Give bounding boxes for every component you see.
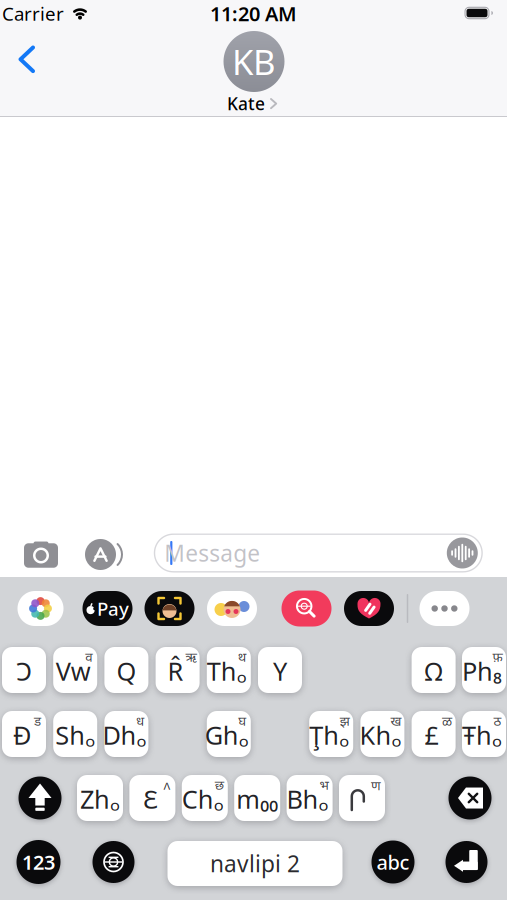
staticText: Ω xyxy=(425,654,443,688)
staticText: घ xyxy=(238,712,246,729)
button[interactable]: Shift xyxy=(18,776,61,819)
button[interactable]: Back xyxy=(17,45,39,73)
button[interactable]: Ω xyxy=(412,647,456,693)
staticText: 123 xyxy=(22,849,55,875)
staticText: Shₒ xyxy=(55,718,95,752)
staticText: Dhₒ xyxy=(102,718,146,752)
button[interactable]: Chₒ xyxy=(182,775,228,821)
button[interactable]: m₀₀ xyxy=(234,775,280,821)
staticText: Vw xyxy=(56,654,91,688)
staticText: m₀₀ xyxy=(236,782,278,816)
staticText: Ţhₒ xyxy=(309,718,349,752)
button[interactable]: Ɔ xyxy=(2,647,46,693)
button[interactable]: £ xyxy=(412,711,456,757)
staticText: ध xyxy=(136,712,144,729)
staticText: £ xyxy=(425,718,439,752)
button[interactable]: More apps xyxy=(419,591,469,626)
button[interactable]: Camera xyxy=(23,539,58,568)
staticText: ʌ xyxy=(163,776,170,793)
staticText: Thₒ xyxy=(207,654,247,688)
staticText: Carrier xyxy=(2,1,64,26)
staticText: Zhₒ xyxy=(80,782,120,816)
button[interactable]: Delete xyxy=(448,776,491,819)
button[interactable]: Return xyxy=(445,841,487,883)
button[interactable]: Vw xyxy=(53,647,97,693)
staticText: Ghₒ xyxy=(205,718,249,752)
staticText: फ़ xyxy=(492,648,502,665)
button[interactable]: Ɛ xyxy=(129,775,175,821)
staticText: navlipi 2 xyxy=(210,848,300,878)
button[interactable]: Space xyxy=(167,841,342,886)
button[interactable]: Numbers xyxy=(16,840,60,884)
button[interactable]: Shₒ xyxy=(53,711,97,757)
staticText: भ xyxy=(320,776,329,793)
button[interactable]: Letters xyxy=(371,840,414,883)
button[interactable]: Apple Pay xyxy=(82,591,132,626)
staticText: Ɛ xyxy=(143,782,158,816)
button[interactable]: Dhₒ xyxy=(104,711,148,757)
staticText: ख xyxy=(390,712,401,729)
button[interactable]: Y xyxy=(258,647,302,693)
button[interactable]: Kate profile xyxy=(223,31,284,92)
staticText: थ xyxy=(238,648,247,665)
button[interactable]: iMessage apps xyxy=(85,539,123,570)
button[interactable]: Memoji xyxy=(144,591,194,626)
staticText: Đ xyxy=(13,718,31,752)
button[interactable]: Ph₈ xyxy=(462,647,506,693)
staticText: ण xyxy=(371,776,381,794)
button[interactable]: Q xyxy=(104,647,148,693)
staticText: ठ xyxy=(493,712,501,729)
button[interactable]: Photos xyxy=(17,591,63,626)
button[interactable]: R̂ xyxy=(156,647,200,693)
button[interactable]: Thₒ xyxy=(207,647,251,693)
staticText: छ xyxy=(215,776,224,793)
button[interactable]: Đ xyxy=(2,711,46,757)
button[interactable]: Message xyxy=(154,533,483,572)
button[interactable]: Khₒ xyxy=(360,711,404,757)
staticText: KB xyxy=(232,38,276,84)
staticText: Y xyxy=(273,654,287,688)
staticText: ड xyxy=(34,712,41,729)
button[interactable]: Stickers xyxy=(207,591,257,626)
button[interactable]: Ghₒ xyxy=(207,711,251,757)
staticText: ळ xyxy=(442,712,452,729)
button[interactable]: Ţhₒ xyxy=(309,711,353,757)
button[interactable]: ण xyxy=(339,775,385,821)
staticText: Q xyxy=(116,654,136,688)
staticText: 11:20 AM xyxy=(210,0,297,27)
staticText: झ xyxy=(340,712,350,729)
staticText: ऋ xyxy=(186,648,197,665)
button[interactable]: Next keyboard xyxy=(92,841,134,883)
staticText: Bhₒ xyxy=(287,782,329,816)
button[interactable]: Search xyxy=(281,590,331,626)
button[interactable]: Digital Touch xyxy=(344,591,394,626)
staticText: Kate xyxy=(227,92,265,115)
button[interactable]: Bhₒ xyxy=(287,775,333,821)
staticText: Pay xyxy=(97,596,129,621)
button[interactable]: Zhₒ xyxy=(77,775,123,821)
staticText: Ŧhₒ xyxy=(462,718,502,752)
staticText: R̂ xyxy=(168,654,184,688)
button[interactable]: Kate xyxy=(227,92,278,115)
staticText: Ph₈ xyxy=(462,654,502,688)
staticText: abc xyxy=(376,849,409,875)
staticText: Khₒ xyxy=(359,718,401,752)
staticText: Message xyxy=(164,538,260,568)
staticText: Ɔ xyxy=(16,654,32,688)
staticText: व xyxy=(85,648,92,665)
staticText: Chₒ xyxy=(182,782,224,816)
button[interactable]: Ŧhₒ xyxy=(462,711,506,757)
